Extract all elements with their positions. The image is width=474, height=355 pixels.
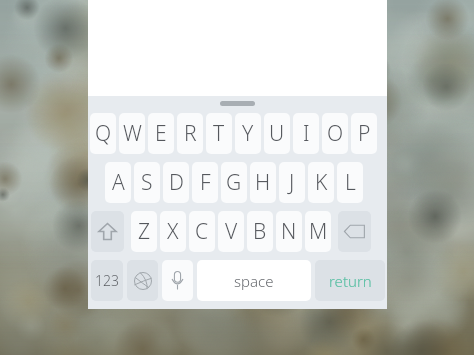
staticText: U xyxy=(269,119,285,148)
staticText: W xyxy=(123,119,142,148)
staticText: 123 xyxy=(95,271,119,290)
staticText: T xyxy=(213,119,225,148)
staticText: V xyxy=(225,217,238,246)
button[interactable]: S xyxy=(134,162,160,203)
button[interactable]: L xyxy=(337,162,363,203)
staticText: N xyxy=(281,217,297,246)
button[interactable]: V xyxy=(218,211,244,252)
staticText: G xyxy=(226,168,242,197)
button[interactable]: 123 xyxy=(91,260,123,301)
button[interactable]: R xyxy=(177,113,203,154)
button[interactable]: X xyxy=(160,211,186,252)
button[interactable]: A xyxy=(105,162,131,203)
button[interactable]: O xyxy=(322,113,348,154)
button[interactable]: E xyxy=(148,113,174,154)
button[interactable]: T xyxy=(206,113,232,154)
button[interactable]: Shift xyxy=(91,211,124,252)
staticText: return xyxy=(329,271,372,291)
staticText: S xyxy=(141,168,153,197)
button[interactable]: I xyxy=(293,113,319,154)
button[interactable]: D xyxy=(163,162,189,203)
button[interactable]: F xyxy=(192,162,218,203)
button[interactable]: Z xyxy=(131,211,157,252)
staticText: B xyxy=(253,217,267,246)
button[interactable]: G xyxy=(221,162,247,203)
staticText: H xyxy=(255,168,271,197)
staticText: E xyxy=(155,119,167,148)
staticText: Q xyxy=(95,119,112,148)
button[interactable]: Resize keyboard xyxy=(220,101,255,106)
button[interactable]: space xyxy=(197,260,311,301)
button[interactable]: return xyxy=(315,260,385,301)
staticText: O xyxy=(327,119,344,148)
button[interactable]: Switch keyboard xyxy=(127,260,158,301)
staticText: Z xyxy=(138,217,151,246)
staticText: A xyxy=(112,168,125,197)
button[interactable]: P xyxy=(351,113,377,154)
staticText: X xyxy=(167,217,179,246)
staticText: F xyxy=(200,168,211,197)
button[interactable]: N xyxy=(276,211,302,252)
button[interactable]: M xyxy=(305,211,331,252)
button[interactable]: Y xyxy=(235,113,261,154)
staticText: C xyxy=(195,217,209,246)
button[interactable]: B xyxy=(247,211,273,252)
staticText: R xyxy=(184,119,197,148)
button[interactable]: K xyxy=(308,162,334,203)
staticText: J xyxy=(289,168,295,197)
button[interactable]: Q xyxy=(90,113,116,154)
staticText: K xyxy=(315,168,328,197)
staticText: L xyxy=(345,168,356,197)
staticText: D xyxy=(169,168,184,197)
button[interactable]: Delete xyxy=(338,211,371,252)
staticText: Y xyxy=(242,119,254,148)
button[interactable]: H xyxy=(250,162,276,203)
button[interactable]: Dictate xyxy=(162,260,193,301)
button[interactable]: U xyxy=(264,113,290,154)
staticText: P xyxy=(358,119,371,148)
button[interactable]: W xyxy=(119,113,145,154)
button[interactable]: C xyxy=(189,211,215,252)
staticText: I xyxy=(303,119,310,148)
staticText: space xyxy=(234,271,274,291)
staticText: M xyxy=(309,217,328,246)
button[interactable]: J xyxy=(279,162,305,203)
